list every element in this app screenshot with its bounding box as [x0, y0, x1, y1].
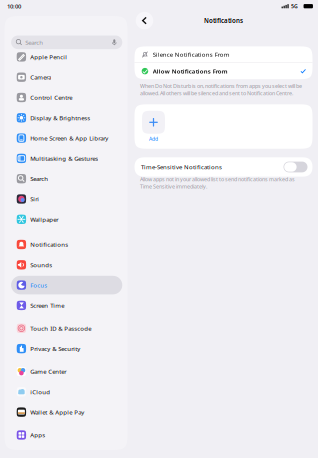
button[interactable]: Wallpaper — [11, 210, 122, 229]
staticText: iCloud — [30, 388, 50, 396]
staticText: Wallet & Apple Pay — [30, 408, 84, 416]
staticText: Time-Sensitive Notifications — [141, 163, 222, 171]
staticText: Apps — [30, 431, 45, 439]
button[interactable]: Control Centre — [11, 88, 122, 107]
button[interactable]: Silence Notifications From — [134, 46, 312, 63]
staticText: Privacy & Security — [30, 344, 80, 353]
staticText: Multitasking & Gestures — [30, 154, 98, 162]
button[interactable]: Notifications — [11, 235, 122, 254]
button[interactable]: Allow Notifications From — [134, 63, 312, 79]
button[interactable]: Search — [11, 169, 122, 188]
button[interactable]: Time-Sensitive Notifications — [283, 162, 307, 172]
staticText: Apple Pencil — [30, 53, 67, 61]
button[interactable]: Wallet & Apple Pay — [11, 403, 122, 421]
staticText: Search — [30, 175, 48, 183]
staticText: Allow Notifications From — [153, 67, 228, 75]
staticText: Home Screen & App Library — [30, 134, 108, 142]
staticText: Search — [25, 38, 43, 46]
staticText: 10:00 — [7, 2, 21, 10]
staticText: Silence Notifications From — [153, 50, 230, 59]
staticText: Focus — [30, 281, 47, 289]
staticText: Screen Time — [30, 301, 64, 309]
button[interactable]: Home Screen & App Library — [11, 129, 122, 147]
button[interactable]: Siri — [11, 190, 122, 208]
staticText: When Do Not Disturb is on, notifications… — [140, 82, 302, 97]
button[interactable]: Sounds — [11, 255, 122, 274]
button[interactable]: Apps — [11, 426, 122, 444]
staticText: Siri — [30, 195, 39, 203]
staticText: Camera — [30, 73, 51, 81]
button[interactable]: iCloud — [11, 382, 122, 401]
staticText: Notifications — [30, 240, 68, 249]
button[interactable]: Apple Pencil — [11, 48, 122, 66]
button[interactable]: Add app — [140, 111, 166, 142]
button[interactable]: Touch ID & Passcode — [11, 319, 122, 338]
button[interactable]: Game Center — [11, 362, 122, 381]
staticText: Touch ID & Passcode — [30, 324, 91, 332]
button[interactable]: Back — [136, 12, 153, 29]
button[interactable]: Display & Brightness — [11, 108, 122, 127]
staticText: Game Center — [30, 367, 66, 376]
staticText: Allow apps not in your allowed list to s… — [140, 176, 295, 190]
staticText: Sounds — [30, 261, 52, 269]
button[interactable]: Multitasking & Gestures — [11, 149, 122, 168]
staticText: Notifications — [204, 16, 243, 25]
button[interactable]: Camera — [11, 68, 122, 86]
button[interactable]: Screen Time — [11, 296, 122, 315]
staticText: Control Centre — [30, 93, 72, 102]
button[interactable]: Privacy & Security — [11, 339, 122, 358]
staticText: Wallpaper — [30, 215, 58, 223]
button[interactable]: Search — [11, 35, 122, 49]
staticText: Display & Brightness — [30, 114, 90, 122]
button[interactable]: Focus — [11, 276, 122, 294]
staticText: Add — [149, 135, 158, 142]
staticText: 5G — [291, 3, 298, 10]
